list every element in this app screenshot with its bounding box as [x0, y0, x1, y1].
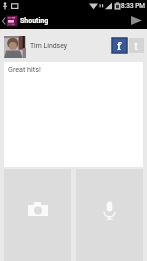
- button[interactable]: Back: [0, 12, 7, 29]
- button[interactable]: Share on Twitter: [129, 38, 144, 53]
- button[interactable]: Camera: [4, 169, 71, 261]
- staticText: t: [134, 39, 139, 53]
- staticText: f: [117, 39, 122, 53]
- button[interactable]: Send: [125, 12, 147, 29]
- staticText: Tim Lindsey: [30, 42, 68, 50]
- staticText: 8:33 PM: [121, 2, 145, 10]
- staticText: Great hits!: [8, 65, 41, 73]
- button[interactable]: Share on Facebook: [112, 38, 127, 53]
- button[interactable]: Voice input: [76, 169, 143, 261]
- button[interactable]: Great hits!: [4, 62, 143, 167]
- staticText: Shouting: [20, 17, 49, 25]
